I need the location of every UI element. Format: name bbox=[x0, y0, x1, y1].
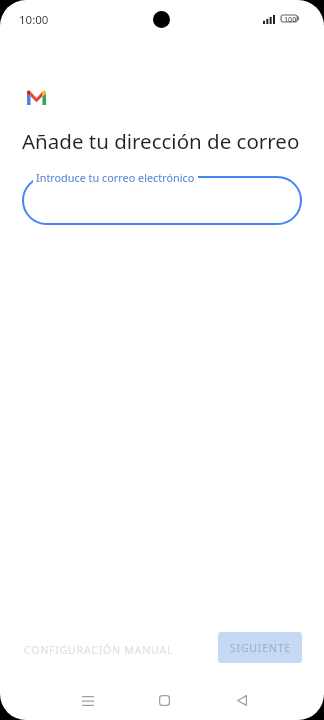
button[interactable]: Recent apps bbox=[65, 678, 110, 720]
button[interactable]: Home bbox=[142, 678, 187, 720]
staticText: Añade tu dirección de correo bbox=[22, 127, 300, 155]
staticText: 10:00 bbox=[19, 12, 49, 28]
staticText: Introduce tu correo electrónico bbox=[36, 170, 195, 185]
button[interactable] bbox=[22, 176, 302, 225]
button[interactable]: CONFIGURACIÓN MANUAL bbox=[16, 636, 182, 664]
staticText: SIGUIENTE bbox=[230, 641, 291, 655]
staticText: CONFIGURACIÓN MANUAL bbox=[24, 643, 174, 657]
button[interactable]: Back bbox=[219, 678, 264, 720]
staticText: 100 bbox=[284, 14, 297, 24]
button[interactable]: SIGUIENTE bbox=[218, 632, 302, 663]
